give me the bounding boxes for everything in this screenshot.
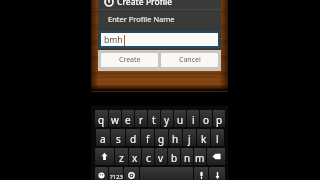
button[interactable]: q (95, 110, 108, 127)
button[interactable]: bmh (101, 33, 218, 46)
button[interactable]: Settings (124, 167, 139, 180)
button[interactable]: t (148, 110, 160, 127)
staticText: r (139, 113, 144, 127)
staticText: u (177, 113, 184, 127)
button[interactable]: Enter (209, 167, 225, 180)
staticText: y (164, 113, 170, 127)
button[interactable]: w (109, 110, 121, 127)
staticText: v (158, 151, 164, 165)
button[interactable]: c (142, 148, 154, 165)
button[interactable]: i (187, 110, 199, 127)
staticText: x (132, 151, 138, 165)
staticText: Enter Profile Name (108, 14, 175, 24)
button[interactable]: z (115, 148, 128, 165)
staticText: g (158, 132, 165, 146)
staticText: z (119, 151, 124, 165)
staticText: h (172, 132, 179, 146)
button[interactable]: f (141, 129, 154, 146)
staticText: m (195, 151, 205, 165)
staticText: n (184, 151, 191, 165)
button[interactable]: Mic (194, 167, 208, 180)
button[interactable]: r (135, 110, 147, 127)
button[interactable]: j (183, 129, 196, 146)
button[interactable]: x (129, 148, 141, 165)
staticText: c (146, 151, 151, 165)
staticText: Create (119, 55, 141, 65)
staticText: b (171, 151, 178, 165)
staticText: t (152, 113, 156, 127)
staticText: w (111, 113, 119, 127)
staticText: i (192, 113, 195, 127)
staticText: ?123 (110, 173, 123, 180)
staticText: f (146, 132, 150, 146)
staticText: s (116, 132, 121, 146)
button[interactable]: p (213, 110, 225, 127)
button[interactable]: Backspace (207, 148, 225, 165)
button[interactable]: e (122, 110, 134, 127)
button[interactable]: y (161, 110, 173, 127)
button[interactable]: h (169, 129, 182, 146)
button[interactable]: Create (101, 53, 158, 67)
staticText: l (216, 132, 219, 146)
button[interactable]: a (96, 129, 110, 146)
button[interactable]: v (155, 148, 167, 165)
button[interactable]: s (111, 129, 125, 146)
button[interactable]: Emoji (95, 167, 108, 180)
staticText: k (201, 132, 207, 146)
staticText: p (216, 113, 223, 127)
button[interactable]: d (126, 129, 140, 146)
staticText: Create Profile (117, 0, 173, 7)
staticText: j (188, 132, 191, 146)
staticText: o (203, 113, 210, 127)
staticText: e (125, 113, 131, 127)
button[interactable]: u (174, 110, 186, 127)
button[interactable]: k (197, 129, 210, 146)
staticText: Cancel (179, 55, 201, 65)
button[interactable]: b (168, 148, 180, 165)
button[interactable]: m (194, 148, 206, 165)
staticText: q (98, 113, 105, 127)
button[interactable]: l (211, 129, 224, 146)
button[interactable]: ?123 (109, 167, 123, 180)
button[interactable]: Shift (95, 148, 114, 165)
staticText: bmh (104, 34, 123, 46)
staticText: d (130, 132, 137, 146)
button[interactable] (140, 167, 193, 180)
button[interactable]: n (181, 148, 193, 165)
staticText: a (100, 132, 106, 146)
button[interactable]: Cancel (161, 53, 218, 67)
button[interactable]: o (200, 110, 212, 127)
button[interactable]: g (155, 129, 168, 146)
